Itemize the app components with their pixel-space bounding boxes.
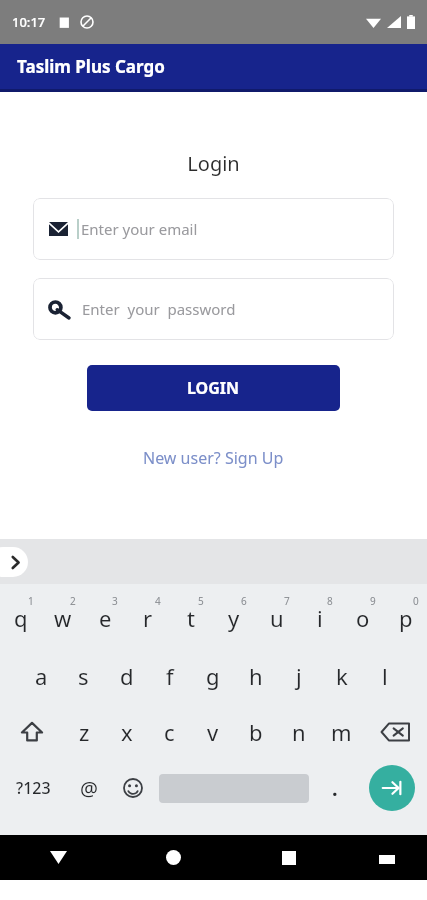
staticText: s: [78, 661, 89, 691]
button[interactable]: j: [277, 650, 320, 702]
button[interactable]: Expand suggestions: [0, 547, 28, 577]
button[interactable]: g: [191, 650, 234, 702]
button[interactable]: l: [363, 650, 406, 702]
button[interactable]: m: [320, 706, 363, 758]
staticText: z: [79, 717, 90, 747]
staticText: Enter your password: [82, 299, 236, 319]
staticText: 3: [112, 594, 118, 608]
staticText: q: [14, 603, 28, 633]
button[interactable]: @: [67, 762, 111, 814]
button[interactable]: w: [42, 590, 84, 646]
button[interactable]: f: [148, 650, 191, 702]
button[interactable]: p: [384, 590, 427, 646]
staticText: .: [332, 775, 338, 802]
button[interactable]: Recents: [231, 835, 346, 880]
button[interactable]: Switch keyboard: [346, 835, 427, 880]
staticText: ?123: [16, 777, 51, 799]
staticText: LOGIN: [187, 377, 240, 399]
staticText: Login: [187, 150, 240, 177]
staticText: l: [382, 661, 388, 691]
staticText: Enter your email: [81, 219, 198, 239]
button[interactable]: New user? Sign Up: [131, 441, 296, 475]
staticText: i: [317, 603, 323, 633]
button[interactable]: Shift: [0, 706, 63, 758]
button[interactable]: n: [277, 706, 320, 758]
staticText: g: [206, 661, 220, 691]
staticText: a: [35, 661, 48, 691]
staticText: b: [249, 717, 263, 747]
button[interactable]: q: [0, 590, 42, 646]
button[interactable]: t: [169, 590, 212, 646]
staticText: k: [336, 661, 348, 691]
staticText: 0: [413, 594, 419, 608]
button[interactable]: z: [63, 706, 105, 758]
staticText: 2: [70, 594, 76, 608]
staticText: r: [143, 603, 153, 633]
button[interactable]: x: [105, 706, 148, 758]
button[interactable]: Back: [0, 835, 116, 880]
staticText: New user? Sign Up: [143, 447, 284, 469]
staticText: o: [356, 603, 370, 633]
staticText: h: [249, 661, 263, 691]
staticText: 9: [370, 594, 376, 608]
staticText: p: [399, 603, 413, 633]
staticText: t: [187, 603, 195, 633]
staticText: 1: [28, 594, 34, 608]
button[interactable]: s: [62, 650, 105, 702]
staticText: v: [207, 717, 219, 747]
button[interactable]: Emoji: [111, 762, 155, 814]
staticText: n: [292, 717, 306, 747]
button[interactable]: o: [341, 590, 384, 646]
staticText: m: [331, 717, 352, 747]
button[interactable]: e: [84, 590, 126, 646]
staticText: 5: [198, 594, 204, 608]
staticText: 10:17: [12, 13, 46, 31]
button[interactable]: i: [298, 590, 341, 646]
button[interactable]: a: [20, 650, 62, 702]
button[interactable]: Home: [116, 835, 231, 880]
staticText: 4: [155, 594, 161, 608]
staticText: x: [121, 717, 133, 747]
staticText: 8: [327, 594, 333, 608]
button[interactable]: ?123: [0, 762, 67, 814]
button[interactable]: .: [313, 762, 357, 814]
staticText: j: [296, 661, 302, 691]
staticText: c: [164, 717, 175, 747]
button[interactable]: r: [126, 590, 169, 646]
button[interactable]: d: [105, 650, 148, 702]
button[interactable]: k: [320, 650, 363, 702]
button[interactable]: c: [148, 706, 191, 758]
staticText: f: [166, 661, 174, 691]
staticText: e: [99, 603, 112, 633]
button[interactable]: v: [191, 706, 234, 758]
button[interactable]: Enter your password: [33, 278, 394, 340]
button[interactable]: u: [255, 590, 298, 646]
button[interactable]: y: [212, 590, 255, 646]
button[interactable]: h: [234, 650, 277, 702]
staticText: 7: [284, 594, 290, 608]
button[interactable]: Enter your email: [33, 198, 394, 260]
button[interactable]: LOGIN: [87, 365, 340, 411]
staticText: w: [54, 603, 72, 633]
staticText: Taslim Plus Cargo: [17, 55, 165, 78]
button[interactable]: Enter: [369, 765, 415, 811]
staticText: d: [120, 661, 134, 691]
staticText: y: [228, 603, 240, 633]
staticText: 6: [241, 594, 247, 608]
button[interactable]: b: [234, 706, 277, 758]
staticText: u: [270, 603, 284, 633]
button[interactable]: Backspace: [363, 706, 427, 758]
staticText: @: [80, 775, 98, 802]
